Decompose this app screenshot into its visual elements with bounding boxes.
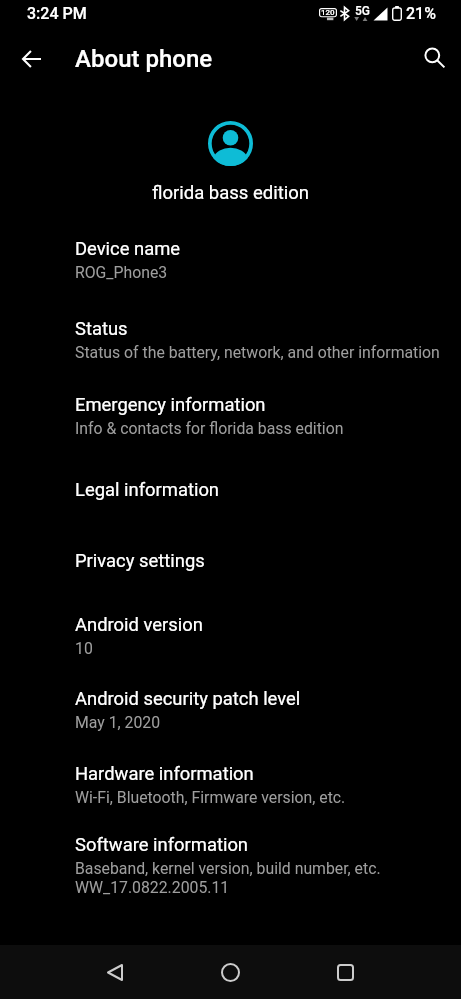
button[interactable]: Navigate up: [8, 35, 55, 82]
staticText: About phone: [75, 45, 213, 73]
staticText: 3:24 PM: [27, 4, 87, 23]
button[interactable]: Software information: [0, 815, 461, 910]
button[interactable]: Device name: [0, 223, 461, 300]
staticText: Info & contacts for florida bass edition: [75, 419, 344, 438]
staticText: Baseband, kernel version, build number, …: [75, 859, 381, 878]
staticText: Legal information: [75, 479, 220, 501]
staticText: Hardware information: [75, 763, 254, 785]
staticText: WW_17.0822.2005.11: [75, 878, 230, 897]
staticText: Privacy settings: [75, 550, 205, 572]
staticText: Wi-Fi, Bluetooth, Firmware version, etc.: [75, 788, 346, 807]
staticText: 5G: [355, 4, 370, 18]
staticText: 10: [75, 639, 93, 658]
staticText: florida bass edition: [0, 182, 461, 204]
staticText: Android version: [75, 614, 203, 636]
button[interactable]: Android version: [0, 590, 461, 668]
button[interactable]: Status: [0, 300, 461, 377]
staticText: Android security patch level: [75, 688, 301, 710]
button[interactable]: Hardware information: [0, 742, 461, 815]
staticText: Software information: [75, 834, 249, 856]
staticText: Device name: [75, 238, 181, 260]
staticText: ROG_Phone3: [75, 263, 168, 282]
staticText: May 1, 2020: [75, 713, 161, 732]
staticText: Status of the battery, network, and othe…: [75, 343, 440, 362]
button[interactable]: Back: [57, 945, 172, 999]
button[interactable]: Search: [411, 34, 458, 81]
button[interactable]: Android security patch level: [0, 668, 461, 742]
button[interactable]: Legal information: [0, 452, 461, 518]
staticText: Status: [75, 318, 128, 340]
button[interactable]: Privacy settings: [0, 518, 461, 590]
button[interactable]: Home: [173, 945, 288, 999]
button[interactable]: Recent apps: [288, 945, 403, 999]
staticText: 120: [321, 8, 335, 17]
button[interactable]: Emergency information: [0, 377, 461, 452]
staticText: 21%: [406, 4, 436, 23]
staticText: Emergency information: [75, 394, 266, 416]
